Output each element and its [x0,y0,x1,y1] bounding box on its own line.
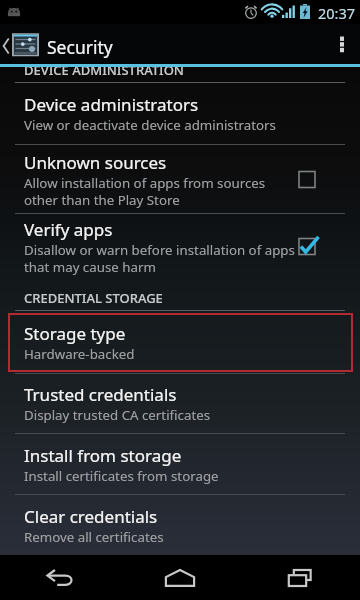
staticText: Remove all certificates [24,528,164,546]
button[interactable]: Storage type [0,311,360,373]
button[interactable]: Recent apps [240,555,360,600]
staticText: Device administrators [24,93,199,116]
button[interactable]: Device administrators [0,83,360,144]
staticText: Unknown sources [24,151,167,174]
staticText: Allow installation of apps from sources … [24,174,266,208]
staticText: Disallow or warn before installation of … [24,241,295,275]
button[interactable]: Clear credentials [0,495,360,555]
staticText: Hardware-backed [24,345,135,363]
staticText: View or deactivate device administrators [24,116,276,134]
button[interactable]: Verify apps [0,214,360,278]
staticText: CREDENTIAL STORAGE [24,289,163,307]
button[interactable]: Back [0,555,120,600]
button[interactable]: Trusted credentials [0,374,360,433]
staticText: 20:37 [318,3,356,23]
button[interactable]: Unknown sources [0,145,360,213]
staticText: Trusted credentials [24,383,177,406]
staticText: Storage type [24,322,126,345]
staticText: Install certificates from storage [24,467,219,485]
button[interactable]: Install from storage [0,434,360,494]
staticText: Clear credentials [24,505,158,528]
button[interactable]: More options [324,24,360,67]
button[interactable]: Navigate up [0,24,42,67]
staticText: Verify apps [24,218,113,241]
button[interactable]: Home [120,555,240,600]
staticText: Install from storage [24,444,182,467]
other: Navigate up [3,38,9,54]
staticText: Display trusted CA certificates [24,406,211,424]
staticText: Security [47,35,113,59]
staticText: DEVICE ADMINISTRATION [24,67,184,79]
